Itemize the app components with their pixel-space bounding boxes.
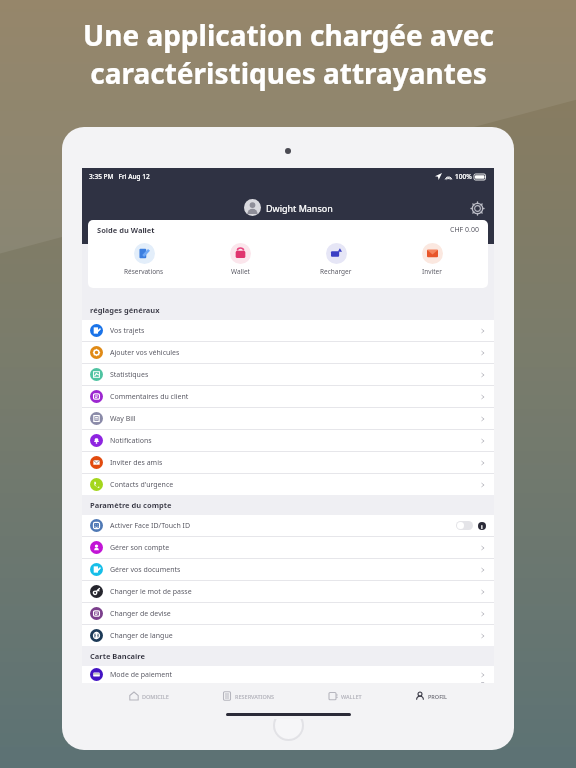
staticText: Solde du Wallet xyxy=(97,225,155,235)
button[interactable]: Notifications xyxy=(82,430,494,451)
button[interactable]: PROFIL xyxy=(409,689,453,703)
button[interactable]: Solde du Wallet xyxy=(88,220,488,288)
staticText: 3:35 PM Fri Aug 12 xyxy=(89,172,150,181)
staticText: Paramètre du compte xyxy=(90,500,172,510)
staticText: Recharger xyxy=(320,267,352,276)
button[interactable]: Wallet xyxy=(200,242,280,277)
staticText: Carte Bancaire xyxy=(90,651,145,661)
staticText: Activer Face ID/Touch ID xyxy=(110,521,191,531)
staticText: Mode de paiement xyxy=(110,670,173,680)
button[interactable]: Vos trajets xyxy=(82,320,494,341)
button[interactable]: Gérer vos documents xyxy=(82,559,494,580)
staticText: Inviter xyxy=(422,267,442,276)
staticText: Notifications xyxy=(110,436,152,446)
button[interactable]: RESERVATIONS xyxy=(216,689,281,703)
staticText: CHF 0.00 xyxy=(450,225,479,235)
button[interactable]: Changer de langue xyxy=(82,625,494,646)
staticText: Vos trajets xyxy=(110,326,145,336)
button[interactable]: Settings xyxy=(469,200,486,217)
staticText: Way Bill xyxy=(110,414,136,424)
staticText: Gérer vos documents xyxy=(110,565,181,575)
staticText: Inviter des amis xyxy=(110,458,163,468)
button[interactable]: Inviter xyxy=(392,242,472,277)
staticText: i xyxy=(481,523,483,530)
staticText: RESERVATIONS xyxy=(235,693,275,700)
staticText: Wallet xyxy=(231,267,250,276)
staticText: Une application chargée avec caractérist… xyxy=(83,16,494,92)
button[interactable]: Activer Face ID/Touch ID xyxy=(82,515,494,536)
button[interactable]: Contacts d'urgence xyxy=(82,474,494,495)
button[interactable]: Changer le mot de passe xyxy=(82,581,494,602)
staticText: Statistiques xyxy=(110,370,149,380)
button[interactable]: Statistiques xyxy=(82,364,494,385)
staticText: réglages généraux xyxy=(90,305,160,315)
staticText: Changer le mot de passe xyxy=(110,587,192,597)
button[interactable]: Recharger xyxy=(296,242,376,277)
staticText: PROFIL xyxy=(428,693,447,700)
button[interactable]: Info xyxy=(478,522,486,530)
staticText: Changer de langue xyxy=(110,631,173,641)
button[interactable]: WALLET xyxy=(322,689,368,703)
staticText: Commentaires du client xyxy=(110,392,189,402)
button[interactable]: Toggle Face ID xyxy=(456,521,473,530)
button[interactable]: Ajouter vos véhicules xyxy=(82,342,494,363)
staticText: Réservations xyxy=(124,267,164,276)
button[interactable]: DOMICILE xyxy=(123,689,175,703)
staticText: 100% xyxy=(455,172,472,181)
staticText: Gérer son compte xyxy=(110,543,170,553)
button[interactable]: Gérer son compte xyxy=(82,537,494,558)
staticText: WALLET xyxy=(341,693,362,700)
button[interactable]: Changer de devise xyxy=(82,603,494,624)
staticText: Contacts d'urgence xyxy=(110,480,174,490)
staticText: Ajouter vos véhicules xyxy=(110,348,180,358)
staticText: DOMICILE xyxy=(142,693,169,700)
button[interactable]: Mode de paiement xyxy=(82,666,494,683)
button[interactable]: Réservations xyxy=(104,242,184,277)
staticText: Dwight Manson xyxy=(266,202,333,214)
button[interactable]: Inviter des amis xyxy=(82,452,494,473)
button[interactable]: Commentaires du client xyxy=(82,386,494,407)
button[interactable]: Way Bill xyxy=(82,408,494,429)
staticText: Changer de devise xyxy=(110,609,171,619)
